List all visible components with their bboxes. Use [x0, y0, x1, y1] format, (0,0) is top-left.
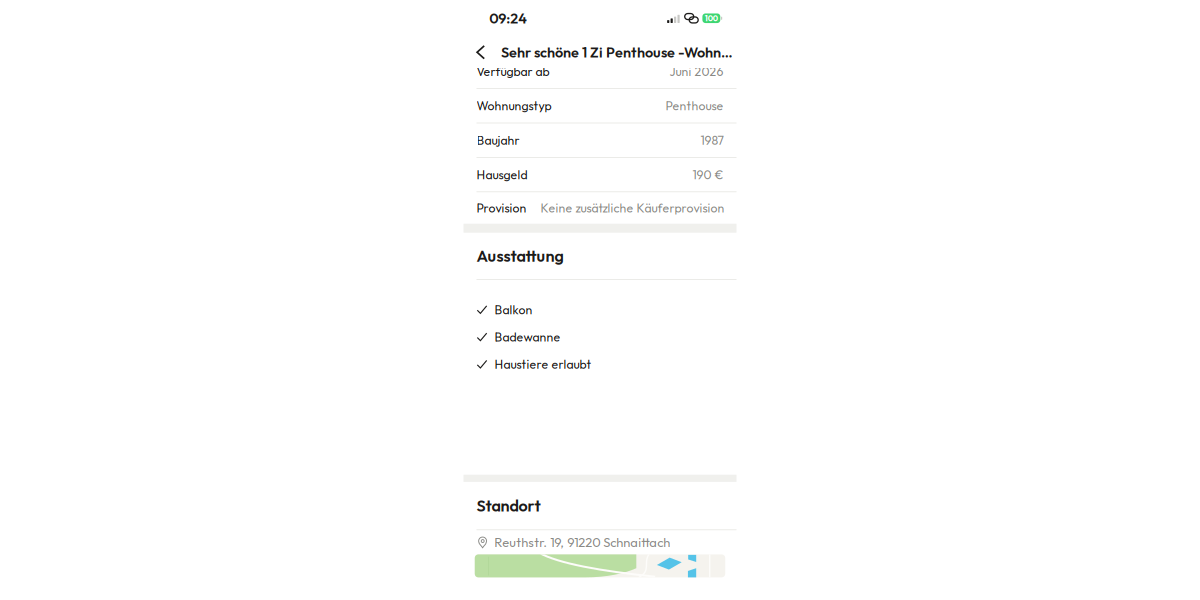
- staticText: 09:24: [489, 9, 527, 27]
- staticText: Juni 2026: [669, 64, 723, 79]
- staticText: Baujahr: [476, 132, 519, 148]
- staticText: Balkon: [494, 302, 532, 317]
- staticText: Hausgeld: [476, 167, 527, 182]
- staticText: 1987: [700, 132, 723, 148]
- staticText: Badewanne: [494, 329, 560, 345]
- staticText: Wohnungstyp: [476, 98, 551, 114]
- button[interactable]: Back: [476, 37, 501, 67]
- staticText: 190 €: [692, 167, 723, 182]
- staticText: Provision: [476, 200, 526, 216]
- staticText: Standort: [476, 495, 540, 516]
- staticText: Reuthstr. 19, 91220 Schnaittach: [494, 534, 670, 550]
- staticText: Sehr schöne 1 Zi Penthouse -Wohn…: [501, 43, 733, 61]
- staticText: Haustiere erlaubt: [494, 356, 591, 372]
- staticText: Keine zusätzliche Käuferprovision: [540, 200, 724, 216]
- staticText: Ausstattung: [476, 246, 563, 266]
- staticText: Penthouse: [665, 98, 723, 114]
- staticText: Verfügbar ab: [476, 64, 549, 79]
- staticText: 100: [705, 13, 718, 23]
